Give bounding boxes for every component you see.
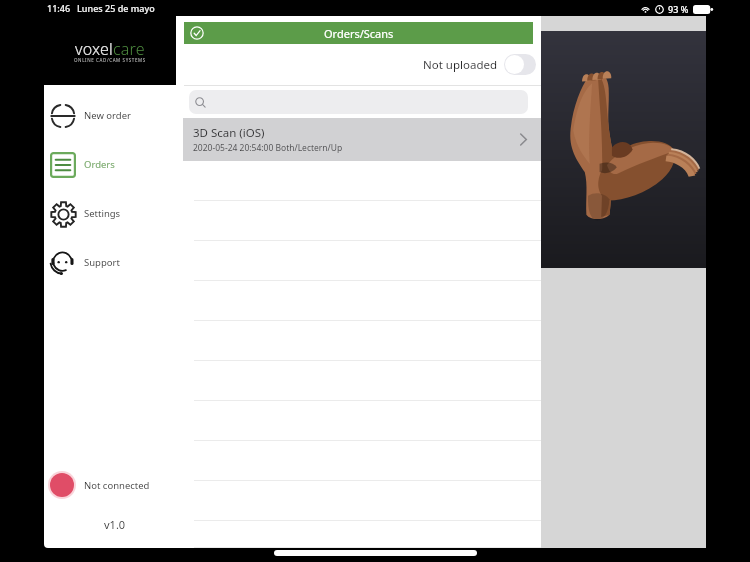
button[interactable]: Select <box>190 26 204 40</box>
staticText: Support <box>84 256 120 269</box>
button[interactable]: 3D Scan (iOS) <box>183 118 541 161</box>
staticText: Orders <box>84 158 115 171</box>
staticText: care <box>113 38 145 60</box>
staticText: 3D Scan (iOS) <box>193 125 265 141</box>
button[interactable]: Not connected <box>48 470 150 500</box>
staticText: New order <box>84 109 131 122</box>
staticText: 93 % <box>668 3 689 15</box>
button[interactable]: New order <box>44 91 177 140</box>
button[interactable] <box>189 90 528 114</box>
button[interactable]: Settings <box>44 189 177 238</box>
button[interactable]: Orders <box>44 140 177 189</box>
staticText: Orders/Scans <box>324 26 394 41</box>
staticText: 2020-05-24 20:54:00 Both/Lectern/Up <box>193 142 343 154</box>
staticText: v1.0 <box>104 517 126 532</box>
staticText: Not connected <box>84 479 150 492</box>
staticText: 11:46 Lunes 25 de mayo <box>47 2 155 14</box>
button[interactable]: Support <box>44 238 177 287</box>
staticText: voxel <box>75 38 113 60</box>
button[interactable]: Not uploaded toggle <box>504 54 536 75</box>
staticText: Not uploaded <box>423 57 498 73</box>
staticText: ONLINE CAD/CAM SYSTEMS <box>74 57 146 63</box>
staticText: Settings <box>84 207 121 220</box>
